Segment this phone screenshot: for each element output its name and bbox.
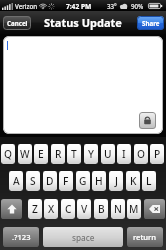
button[interactable]: space [43, 227, 123, 247]
staticText: P [154, 147, 161, 161]
staticText: J [115, 174, 118, 188]
staticText: X [48, 202, 55, 216]
staticText: B [98, 202, 105, 216]
staticText: 7:42 PM [66, 2, 92, 11]
button[interactable]: V [77, 199, 91, 219]
button[interactable]: Share [137, 16, 164, 30]
staticText: O [137, 147, 145, 161]
button[interactable]: F [59, 171, 73, 191]
button[interactable]: M [127, 199, 141, 219]
staticText: Y [88, 147, 94, 161]
button[interactable]: B [94, 199, 108, 219]
button[interactable]: E [34, 144, 48, 164]
staticText: R [55, 147, 62, 161]
staticText: 90% [131, 2, 144, 10]
staticText: G [79, 174, 87, 188]
staticText: Status Update [44, 15, 122, 30]
button[interactable]: Y [84, 144, 98, 164]
staticText: W [20, 147, 30, 161]
button[interactable]: Shift [1, 199, 22, 219]
button[interactable]: C [61, 199, 75, 219]
button[interactable]: X [44, 199, 58, 219]
staticText: A [13, 174, 20, 188]
staticText: H [95, 174, 103, 188]
button[interactable]: .?123 [3, 227, 39, 247]
button[interactable]: D [43, 171, 57, 191]
staticText: .?123 [12, 232, 31, 242]
button[interactable]: A [9, 171, 23, 191]
button[interactable]: G [76, 171, 90, 191]
staticText: E [38, 147, 44, 161]
button[interactable]: W [18, 144, 32, 164]
button[interactable]: J [109, 171, 123, 191]
staticText: D [46, 174, 54, 188]
button[interactable]: U [101, 144, 115, 164]
staticText: F [63, 174, 69, 188]
button[interactable]: L [142, 171, 156, 191]
button[interactable]: Cancel [3, 16, 31, 30]
button[interactable]: Z [28, 199, 42, 219]
button[interactable]: P [150, 144, 164, 164]
button[interactable]: Privacy lock [3, 36, 163, 134]
button[interactable]: I [117, 144, 131, 164]
staticText: Verizon [15, 2, 38, 10]
button[interactable]: Privacy lock [139, 112, 156, 129]
staticText: L [146, 174, 152, 188]
staticText: Z [32, 202, 38, 216]
button[interactable]: T [67, 144, 81, 164]
staticText: K [130, 174, 137, 188]
staticText: C [65, 202, 72, 216]
staticText: N [114, 202, 122, 216]
staticText: Share [142, 19, 160, 27]
button[interactable]: O [134, 144, 148, 164]
button[interactable]: Q [1, 144, 15, 164]
staticText: U [104, 147, 112, 161]
button[interactable]: N [111, 199, 125, 219]
button[interactable]: return [127, 227, 163, 247]
button[interactable]: S [26, 171, 40, 191]
button[interactable]: H [92, 171, 106, 191]
button[interactable]: Backspace [144, 199, 165, 219]
staticText: V [81, 202, 88, 216]
button[interactable]: R [51, 144, 65, 164]
button[interactable]: K [126, 171, 140, 191]
staticText: Cancel [7, 19, 28, 27]
staticText: T [71, 147, 77, 161]
staticText: Q [4, 147, 12, 161]
staticText: I [122, 147, 126, 161]
staticText: 33° [107, 2, 117, 10]
staticText: space [72, 232, 95, 243]
staticText: M [129, 202, 139, 216]
staticText: S [30, 174, 36, 188]
staticText: return [133, 232, 157, 242]
